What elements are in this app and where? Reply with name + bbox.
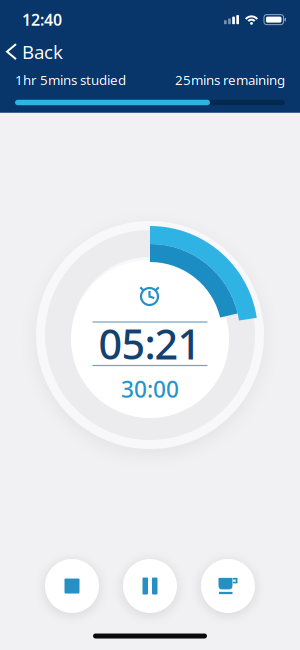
button[interactable]: Pause	[123, 559, 177, 613]
button[interactable]: Stop	[45, 559, 99, 613]
staticText: 30:00	[121, 374, 179, 404]
staticText: Back	[22, 39, 63, 64]
staticText: 1hr 5mins studied	[15, 71, 126, 89]
button[interactable]: Back	[0, 39, 63, 64]
staticText: 05:21	[98, 316, 201, 371]
button[interactable]: Break	[201, 559, 255, 613]
staticText: 12:40	[22, 9, 62, 30]
staticText: 25mins remaining	[175, 71, 285, 89]
